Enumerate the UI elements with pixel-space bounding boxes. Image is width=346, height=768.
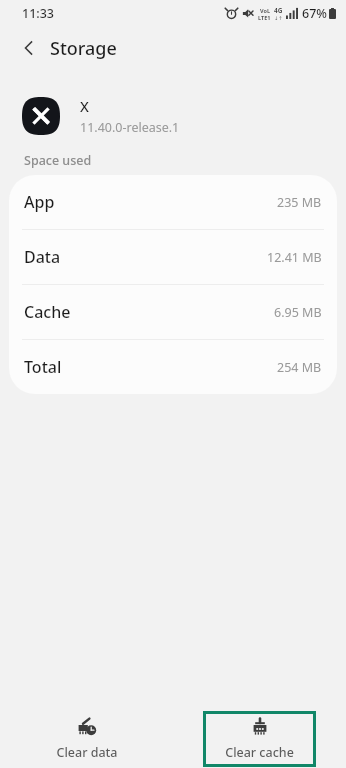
staticText: App [24,191,55,213]
button[interactable]: Data [9,230,337,284]
staticText: 12.41 MB [267,249,322,266]
staticText: Cache [24,301,71,323]
button[interactable]: Total [9,340,337,394]
staticText: Data [24,246,61,268]
staticText: ↓↑ [274,15,283,21]
staticText: 4G [274,6,283,15]
other: Clear data [77,717,97,737]
staticText: 254 MB [277,359,322,376]
button[interactable]: Cache [9,285,337,339]
staticText: Clear cache [225,744,294,761]
staticText: Total [24,356,62,378]
button[interactable]: Back [12,31,46,65]
staticText: 67% [302,5,327,22]
staticText: 6.95 MB [274,304,322,321]
other: Clear cache [250,717,270,737]
staticText: VoL [260,7,270,14]
staticText: Storage [50,36,117,61]
staticText: Space used [24,152,92,169]
staticText: 11:33 [22,5,55,22]
staticText: 11.40.0-release.1 [80,119,180,136]
button[interactable]: Clear data [32,711,142,767]
staticText: 235 MB [277,194,322,211]
staticText: Clear data [56,744,118,761]
staticText: X [80,96,89,116]
button[interactable]: Clear cache [203,711,316,767]
button[interactable]: App [9,175,337,229]
staticText: LTE1 [258,14,271,21]
